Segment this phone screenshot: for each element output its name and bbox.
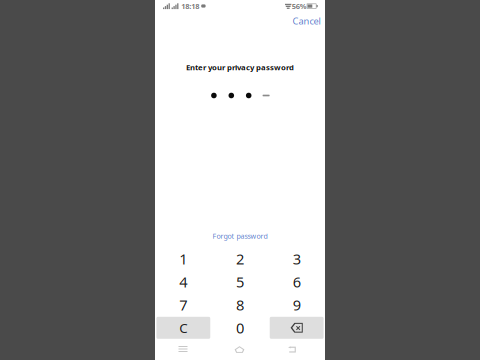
button[interactable]: 5 [212,270,268,293]
button[interactable]: Forgot password [202,228,278,244]
staticText: 8 [236,295,244,315]
button[interactable]: 8 [212,293,268,316]
button[interactable]: C [155,316,212,339]
staticText: 56% [292,1,307,11]
staticText: 9 [293,295,301,315]
button[interactable]: 9 [268,293,325,316]
staticText: Cancel [292,15,320,27]
button[interactable]: Back [269,341,315,357]
staticText: 0 [236,318,244,338]
staticText: 3 [293,249,301,269]
button[interactable]: 4 [155,270,212,293]
staticText: C [179,319,187,337]
staticText: 4 [179,272,187,292]
staticText: 5 [236,272,244,292]
button[interactable]: 6 [268,270,325,293]
button[interactable]: 3 [268,247,325,270]
staticText: Forgot password [212,231,267,241]
button[interactable]: Home [216,341,262,357]
staticText: 2 [236,249,244,269]
button[interactable]: 2 [212,247,268,270]
button[interactable]: Cancel [284,11,328,30]
staticText: Enter your privacy password [186,62,294,72]
button[interactable]: 1 [155,247,212,270]
button[interactable]: Delete [268,316,325,339]
button[interactable]: 0 [212,316,268,339]
staticText: 1 [179,249,187,269]
staticText: 7 [179,295,187,315]
button[interactable]: 7 [155,293,212,316]
button[interactable]: Recents [160,341,206,357]
staticText: 6 [293,272,301,292]
staticText: 18:18 [179,1,199,11]
